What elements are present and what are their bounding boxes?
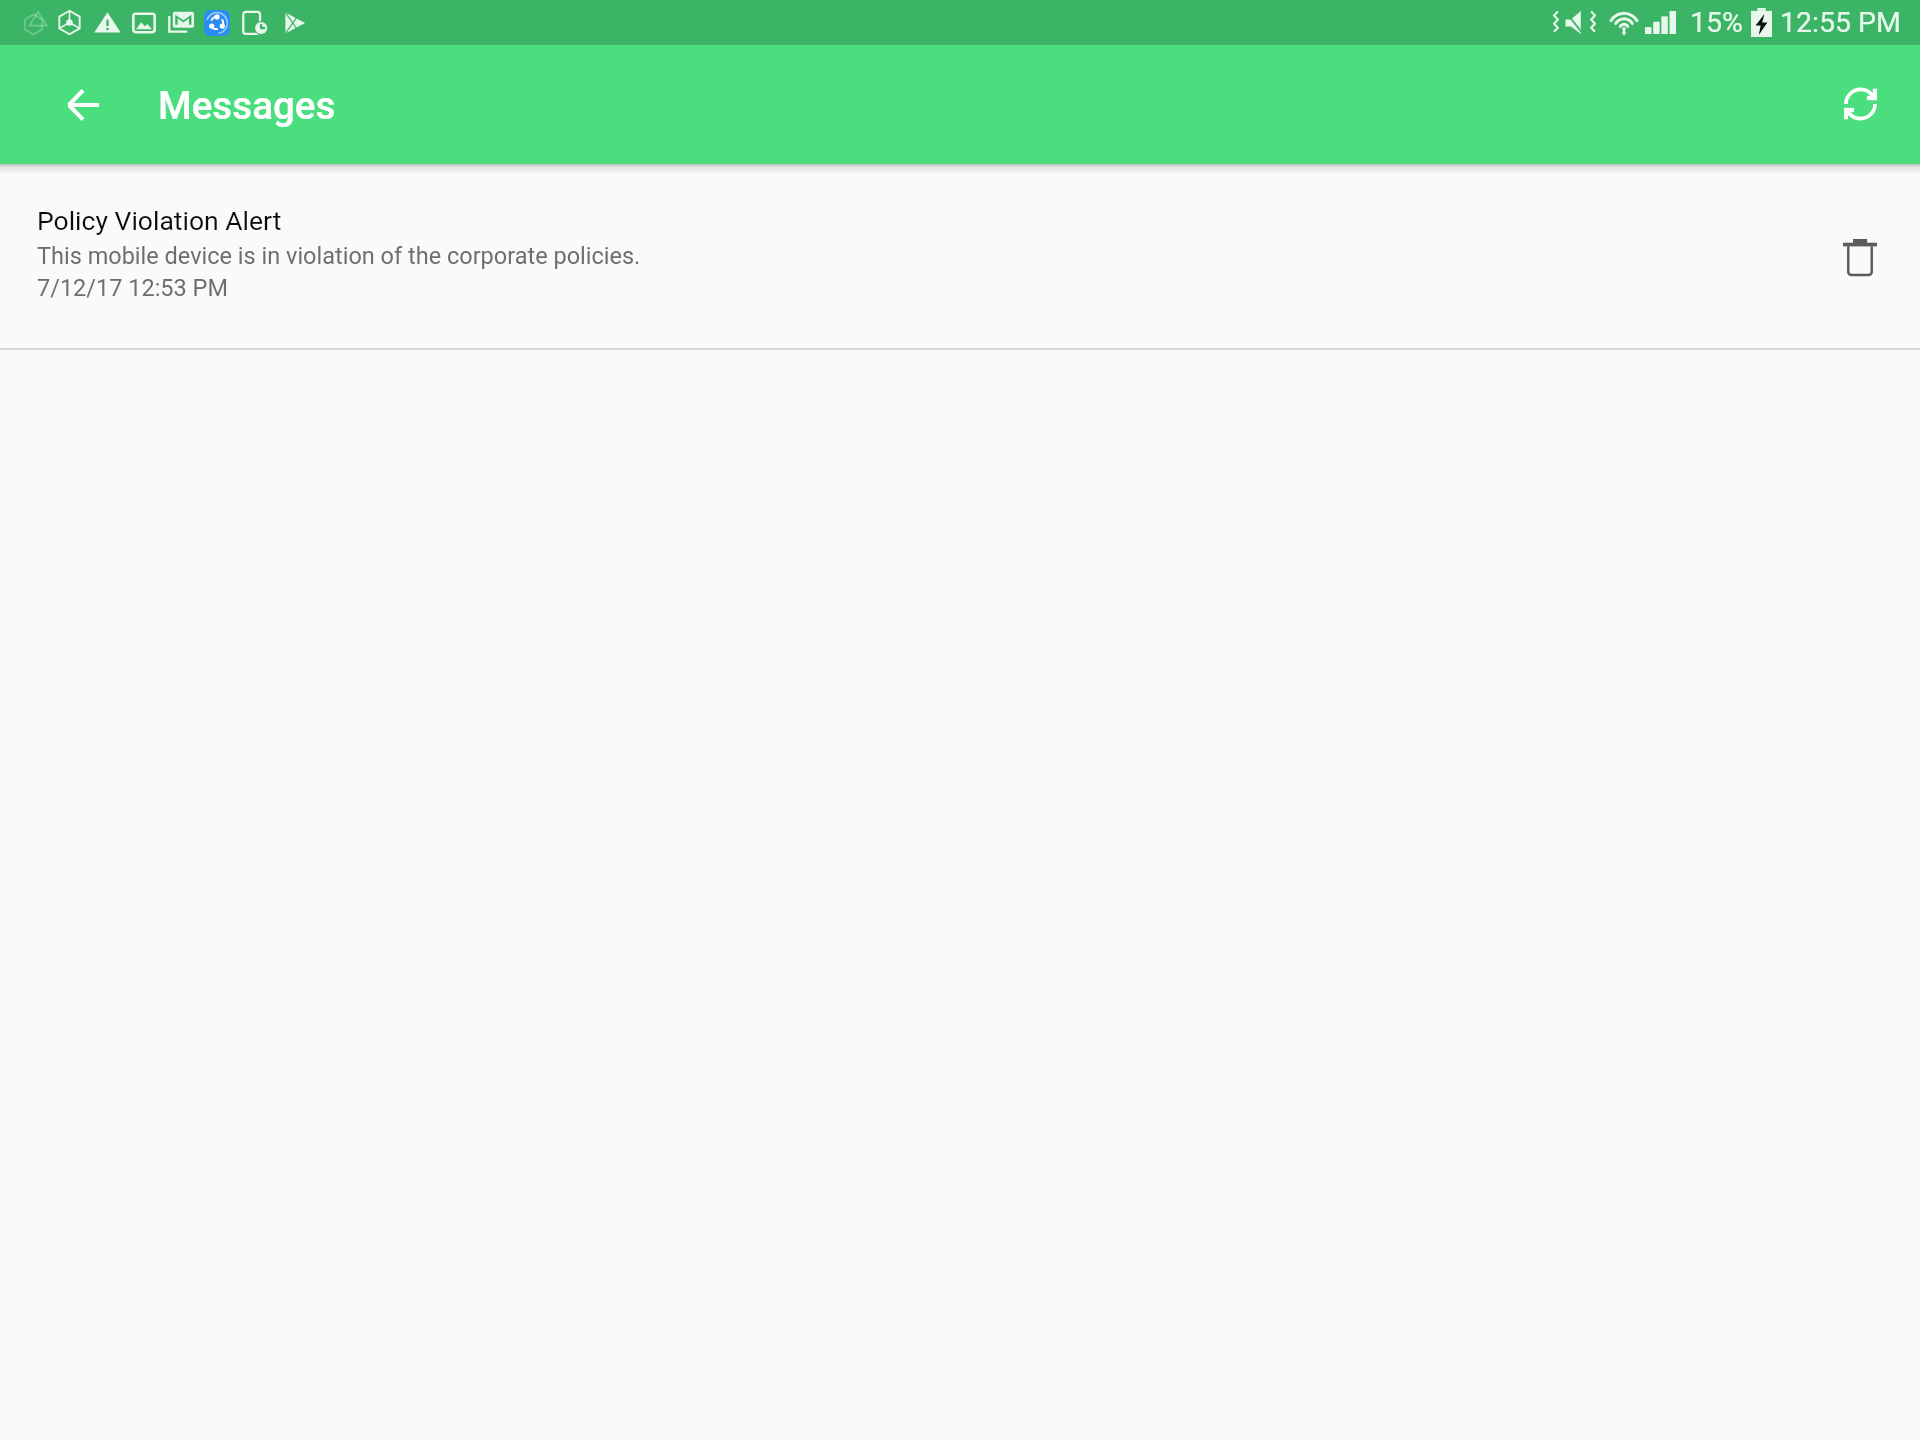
button[interactable]: Refresh xyxy=(1832,76,1888,132)
staticText: 12:55 PM xyxy=(1780,6,1901,39)
button[interactable]: Delete xyxy=(1832,229,1888,285)
button[interactable]: Back xyxy=(55,77,111,133)
staticText: Messages xyxy=(158,83,336,128)
staticText: Policy Violation Alert xyxy=(37,205,282,236)
staticText: 7/12/17 12:53 PM xyxy=(37,274,228,302)
button[interactable]: Policy Violation Alert xyxy=(0,174,1920,350)
staticText: This mobile device is in violation of th… xyxy=(37,242,641,270)
staticText: 15% xyxy=(1690,6,1743,39)
